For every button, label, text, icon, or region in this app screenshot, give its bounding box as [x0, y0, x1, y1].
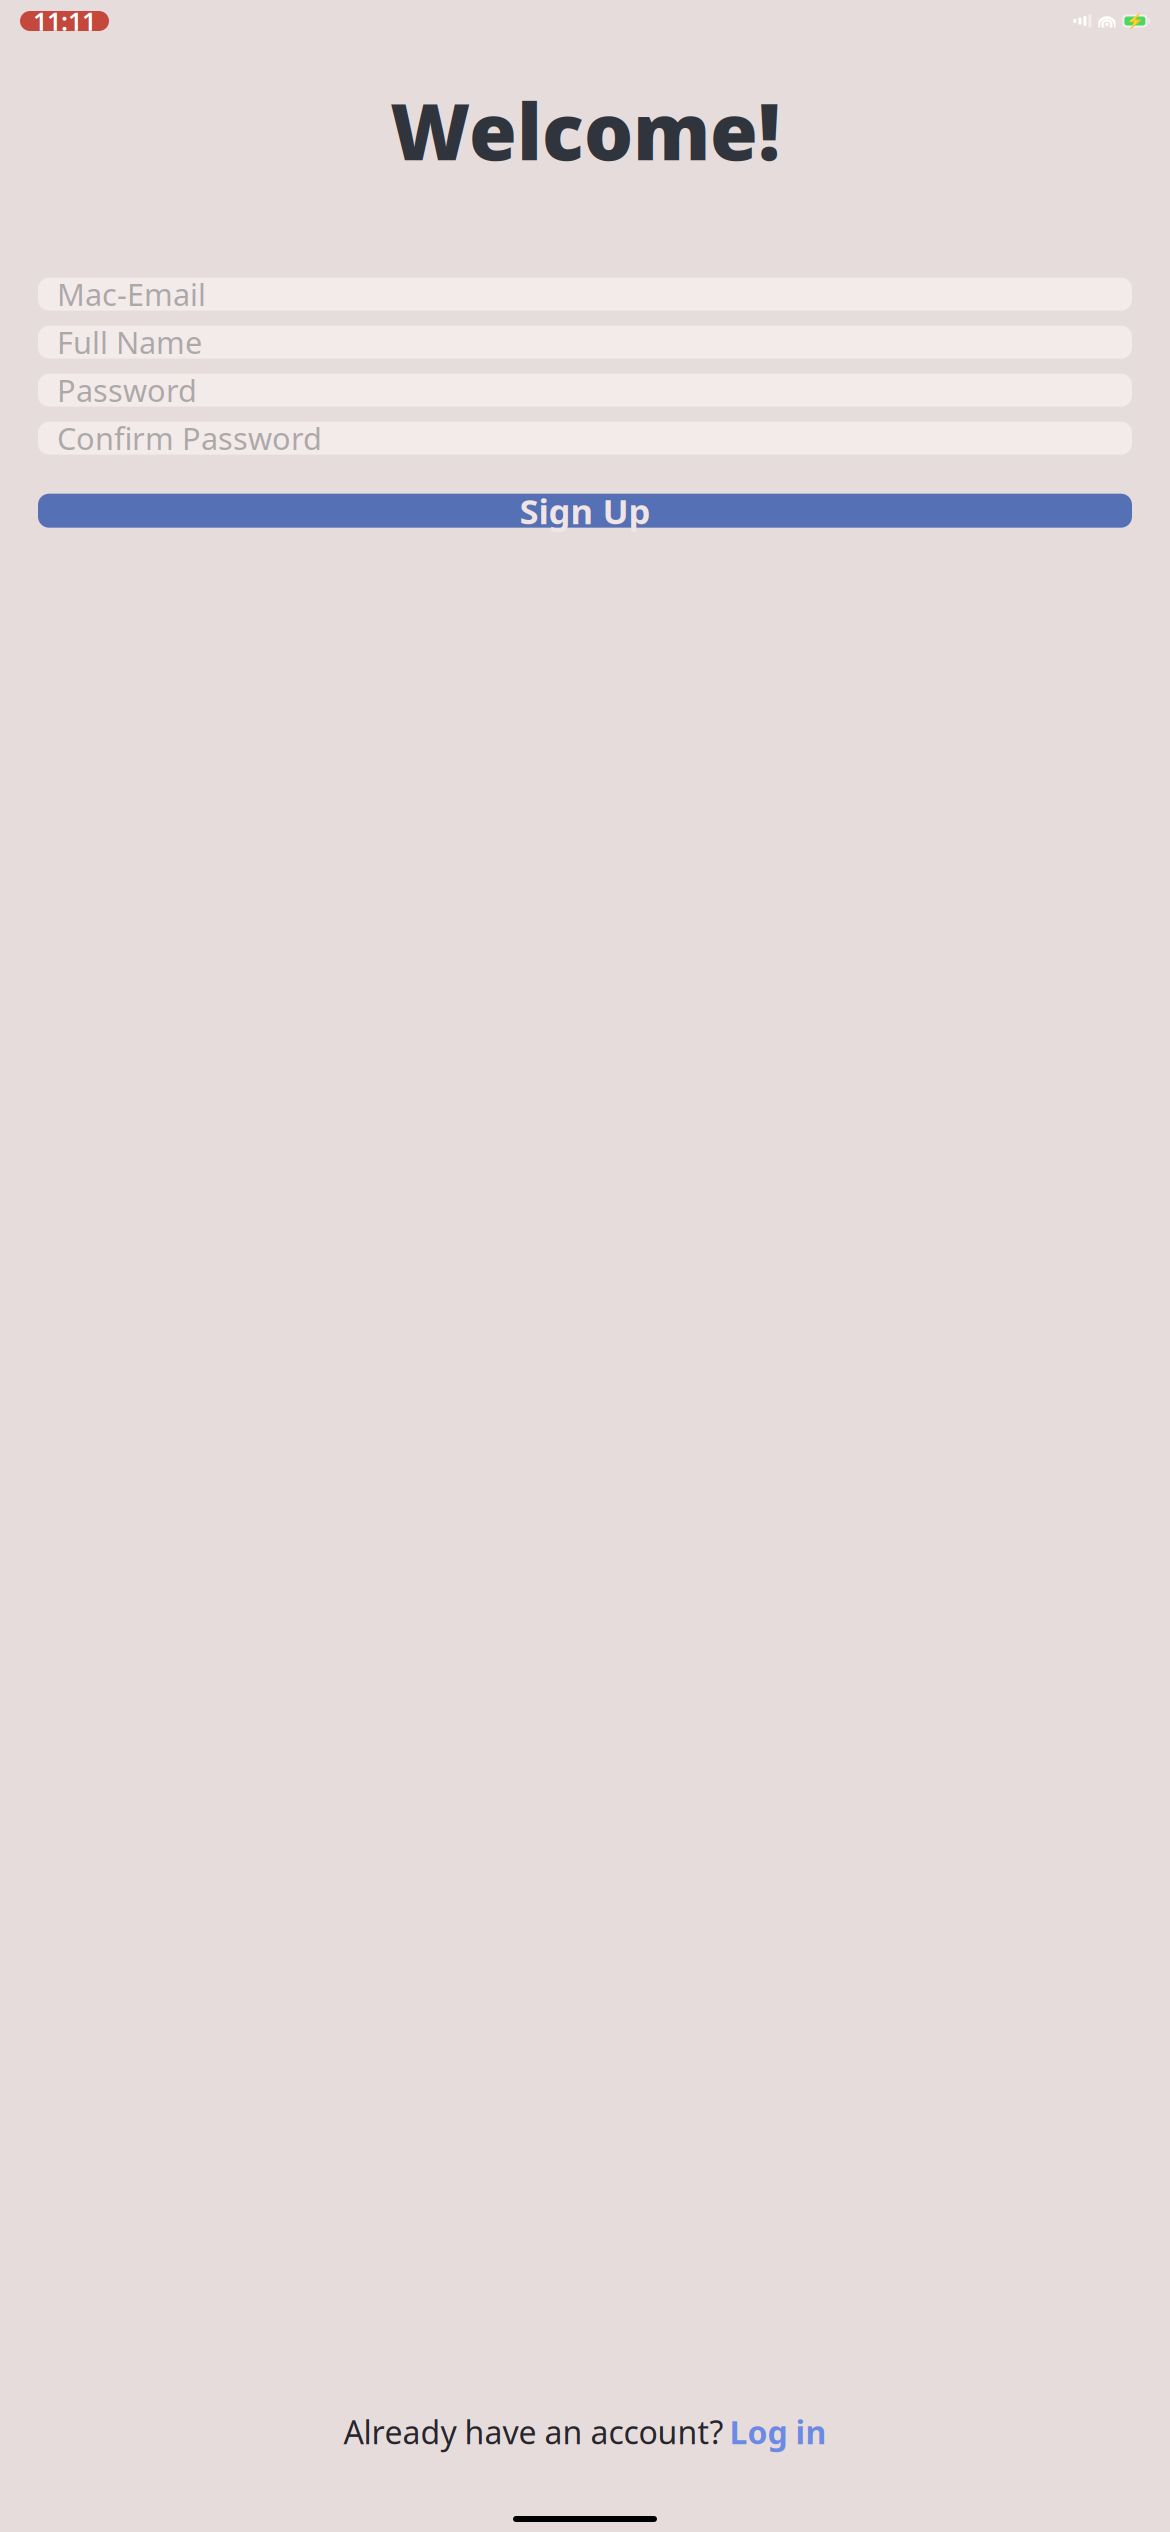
staticText: ⚡ — [1126, 13, 1144, 29]
staticText: Log in — [729, 2410, 826, 2453]
button[interactable]: Password — [38, 374, 1132, 407]
staticText: Confirm Password — [57, 418, 322, 458]
button[interactable]: Log in — [729, 2410, 826, 2453]
button[interactable]: Confirm Password — [38, 422, 1132, 455]
button[interactable]: Sign Up — [38, 494, 1132, 528]
button[interactable]: Full Name — [38, 326, 1132, 359]
staticText: Full Name — [57, 322, 202, 362]
staticText: Already have an account? — [343, 2410, 723, 2453]
button[interactable]: Mac-Email — [38, 278, 1132, 311]
staticText: 11:11 — [33, 4, 96, 38]
staticText: Mac-Email — [57, 274, 206, 314]
staticText: Password — [57, 370, 197, 410]
staticText: Welcome! — [390, 79, 780, 182]
staticText: Sign Up — [519, 488, 650, 534]
